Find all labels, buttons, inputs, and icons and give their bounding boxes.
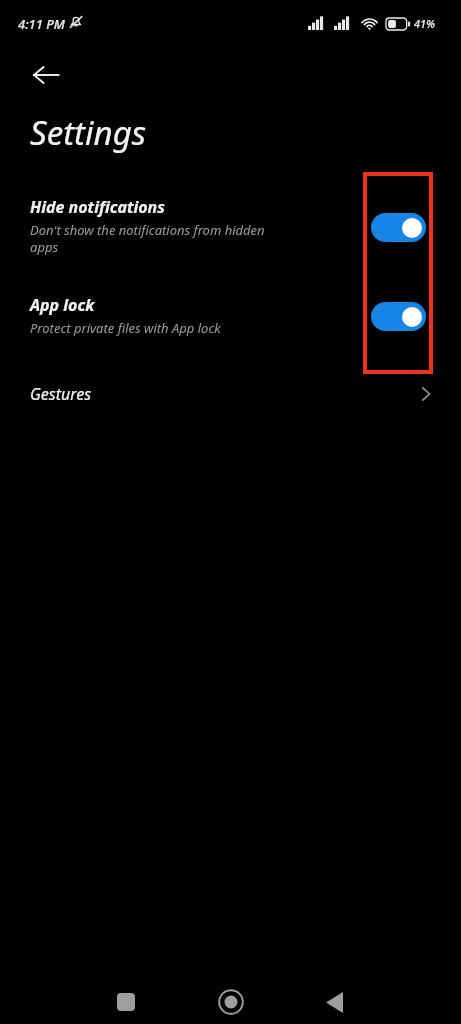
staticText: 4:11 PM bbox=[18, 15, 65, 33]
staticText: Don't show the notifications from hidden… bbox=[30, 221, 265, 256]
button[interactable]: Recent apps bbox=[98, 974, 154, 1024]
button[interactable]: Toggle bbox=[371, 213, 426, 242]
staticText: Settings bbox=[30, 110, 147, 155]
button[interactable]: Gestures bbox=[0, 373, 461, 415]
staticText: Gestures bbox=[30, 383, 92, 405]
staticText: App lock bbox=[30, 294, 95, 316]
button[interactable]: Home bbox=[203, 974, 259, 1024]
staticText: Hide notifications bbox=[30, 196, 165, 218]
button[interactable]: Toggle bbox=[371, 302, 426, 331]
button[interactable]: Back bbox=[26, 55, 66, 95]
button[interactable]: Back bbox=[306, 974, 362, 1024]
button[interactable]: App lock bbox=[30, 294, 351, 337]
button[interactable]: Hide notifications bbox=[30, 196, 351, 256]
staticText: Protect private files with App lock bbox=[30, 319, 221, 337]
staticText: 41% bbox=[414, 16, 436, 31]
